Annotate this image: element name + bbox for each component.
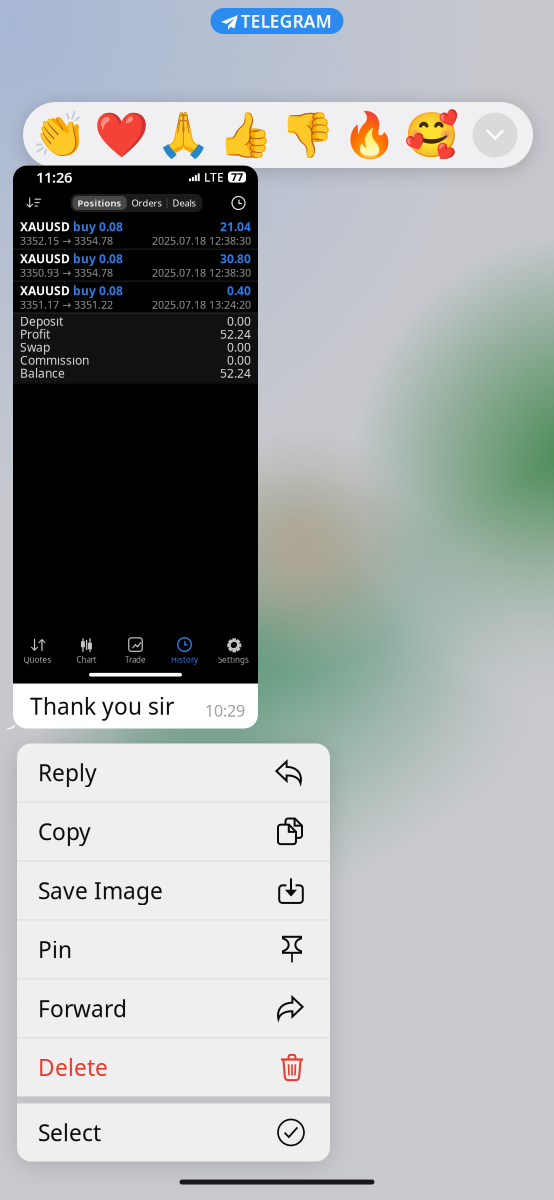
staticText: ❤️ — [93, 110, 148, 160]
staticText: 0.40 — [227, 283, 251, 298]
button[interactable]: Quotes — [13, 633, 62, 670]
staticText: Swap — [20, 339, 50, 355]
staticText: 11:26 — [36, 167, 72, 187]
button[interactable]: Folded hands — [152, 105, 214, 165]
staticText: Copy — [38, 816, 91, 846]
button[interactable]: XAUUSD — [13, 249, 258, 281]
staticText: Chart — [76, 654, 96, 665]
staticText: 3351.17 → 3351.22 — [20, 297, 113, 312]
button[interactable]: Clap — [28, 105, 90, 165]
staticText: Thank you sir — [30, 691, 174, 721]
staticText: 52.24 — [220, 326, 251, 342]
button[interactable]: Forward — [17, 979, 330, 1037]
button[interactable]: History — [160, 633, 209, 670]
button[interactable]: Reply — [17, 743, 330, 802]
staticText: buy 0.08 — [70, 283, 123, 298]
staticText: XAUUSD — [20, 219, 70, 234]
staticText: TELEGRAM — [240, 9, 331, 32]
staticText: Pin — [38, 934, 72, 964]
staticText: Deals — [172, 197, 195, 209]
staticText: 10:29 — [205, 700, 245, 721]
staticText: 3352.15 → 3354.78 — [20, 233, 113, 248]
staticText: 0.00 — [227, 313, 251, 329]
staticText: 🥰 — [403, 110, 458, 160]
button[interactable]: Smiling face with hearts — [400, 105, 462, 165]
staticText: Commission — [20, 352, 89, 368]
button[interactable]: Thumbs down — [276, 105, 338, 165]
button[interactable]: Trade — [111, 633, 160, 670]
staticText: 👏 — [31, 110, 86, 160]
staticText: 👍 — [217, 110, 272, 160]
staticText: Delete — [38, 1052, 108, 1082]
button[interactable]: Delete — [17, 1038, 330, 1096]
button[interactable]: Heart — [90, 105, 152, 165]
staticText: 21.04 — [220, 219, 251, 234]
button[interactable]: Thumbs up — [214, 105, 276, 165]
button[interactable]: Copy — [17, 802, 330, 860]
button[interactable]: History — [223, 190, 254, 216]
staticText: Reply — [38, 757, 97, 788]
button[interactable]: More reactions — [462, 105, 528, 165]
staticText: Orders — [132, 197, 162, 209]
button[interactable]: Deals — [167, 196, 200, 210]
staticText: XAUUSD — [20, 283, 70, 298]
staticText: 2025.07.18 13:24:20 — [152, 297, 251, 312]
staticText: buy 0.08 — [70, 219, 123, 234]
staticText: Settings — [218, 654, 249, 665]
staticText: Quotes — [23, 654, 51, 665]
button[interactable]: Pin — [17, 920, 330, 978]
staticText: 0.00 — [227, 339, 251, 355]
staticText: 🙏 — [155, 110, 210, 160]
button[interactable]: TELEGRAM — [210, 8, 343, 34]
staticText: LTE — [204, 169, 224, 185]
staticText: Balance — [20, 365, 65, 381]
staticText: Positions — [78, 197, 122, 209]
button[interactable]: XAUUSD — [13, 281, 258, 313]
staticText: 3350.93 → 3354.78 — [20, 265, 113, 280]
staticText: 🔥 — [341, 110, 396, 160]
staticText: 30.80 — [220, 251, 251, 266]
button[interactable]: Fire — [338, 105, 400, 165]
staticText: 2025.07.18 12:38:30 — [152, 233, 251, 248]
staticText: XAUUSD — [20, 251, 70, 266]
staticText: History — [171, 654, 198, 665]
staticText: 👎 — [279, 110, 334, 160]
staticText: 0.00 — [227, 352, 251, 368]
staticText: 77 — [231, 170, 243, 184]
staticText: Deposit — [20, 313, 63, 329]
staticText: 2025.07.18 12:38:30 — [152, 265, 251, 280]
button[interactable]: Save Image — [17, 861, 330, 919]
staticText: Profit — [20, 326, 50, 342]
button[interactable]: Chart — [62, 633, 111, 670]
staticText: Save Image — [38, 875, 163, 905]
button[interactable]: Sort — [17, 190, 50, 216]
staticText: 52.24 — [220, 365, 251, 381]
staticText: buy 0.08 — [70, 251, 123, 266]
staticText: Trade — [125, 654, 146, 665]
button[interactable]: Select — [17, 1103, 330, 1161]
button[interactable]: Orders — [127, 196, 167, 210]
staticText: Forward — [38, 993, 127, 1023]
staticText: Select — [38, 1117, 101, 1147]
button[interactable]: Positions — [73, 196, 127, 210]
button[interactable]: XAUUSD — [13, 217, 258, 249]
button[interactable]: Settings — [209, 633, 258, 670]
